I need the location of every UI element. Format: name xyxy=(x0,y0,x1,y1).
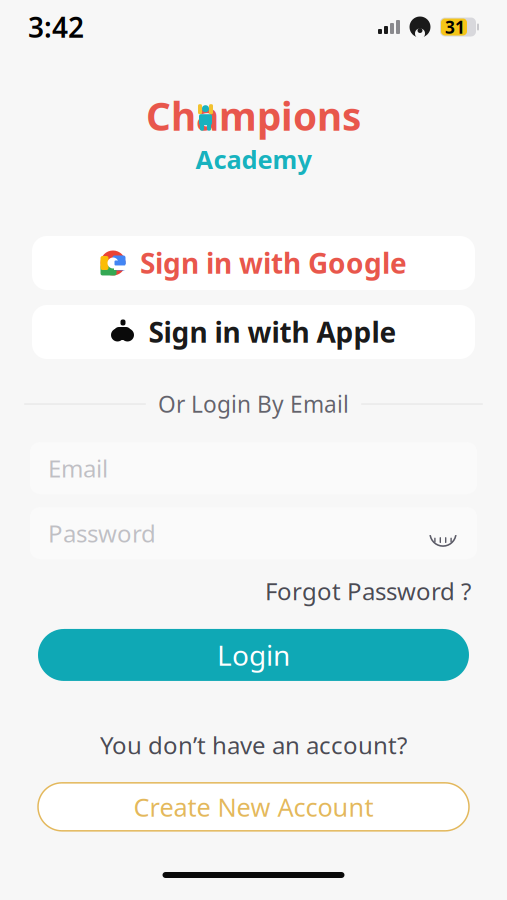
staticText: 3:42 xyxy=(28,8,84,46)
staticText: Sign in with Apple xyxy=(148,313,396,351)
button[interactable]: Show password xyxy=(427,522,459,544)
button[interactable]: Sign in with Google xyxy=(32,236,475,290)
staticText: Login xyxy=(217,636,290,674)
staticText: You don’t have an account? xyxy=(100,729,407,761)
staticText: Create New Account xyxy=(133,790,373,824)
staticText: Password xyxy=(48,517,156,549)
button[interactable]: Sign in with Apple xyxy=(32,305,475,359)
staticText: Email xyxy=(48,452,108,484)
button[interactable]: Forgot Password ? xyxy=(265,571,471,611)
staticText: Or Login By Email xyxy=(158,389,349,419)
staticText: C xyxy=(146,90,171,141)
staticText: h xyxy=(171,90,196,141)
staticText: Sign in with Google xyxy=(140,244,407,282)
button[interactable]: Login xyxy=(38,629,469,681)
staticText: ampions xyxy=(196,90,361,141)
staticText: 31 xyxy=(445,15,465,38)
staticText: Academy xyxy=(195,142,311,176)
button[interactable]: Create New Account xyxy=(38,783,469,831)
staticText: Forgot Password ? xyxy=(265,575,471,607)
